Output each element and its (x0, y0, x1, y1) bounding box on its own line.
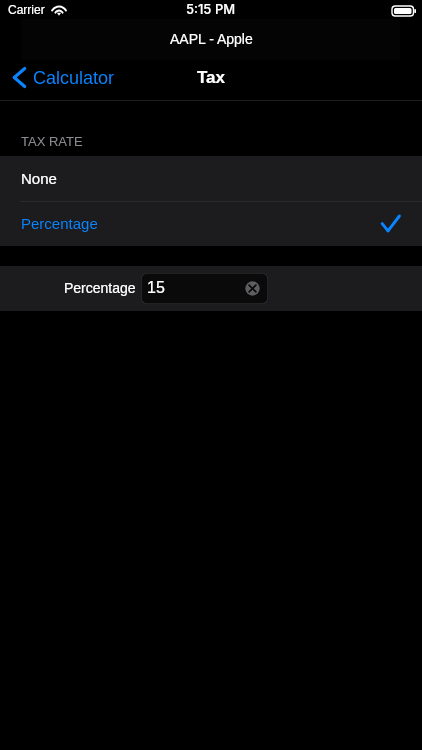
staticText: Percentage (64, 280, 136, 296)
staticText: Carrier (8, 3, 45, 16)
button[interactable]: Calculator (13, 67, 115, 88)
staticText: None (21, 170, 57, 187)
staticText: Tax (197, 68, 226, 87)
staticText: 15 (147, 279, 165, 297)
staticText: TAX RATE (21, 134, 83, 149)
button[interactable]: None (0, 156, 422, 201)
staticText: Percentage (21, 215, 98, 232)
button[interactable]: 15 (141, 273, 268, 304)
staticText: 5:15 PM (186, 1, 236, 17)
button[interactable]: Clear text (245, 281, 260, 296)
button[interactable]: Percentage (0, 202, 422, 246)
staticText: AAPL - Apple (170, 31, 253, 47)
staticText: Calculator (33, 68, 115, 88)
